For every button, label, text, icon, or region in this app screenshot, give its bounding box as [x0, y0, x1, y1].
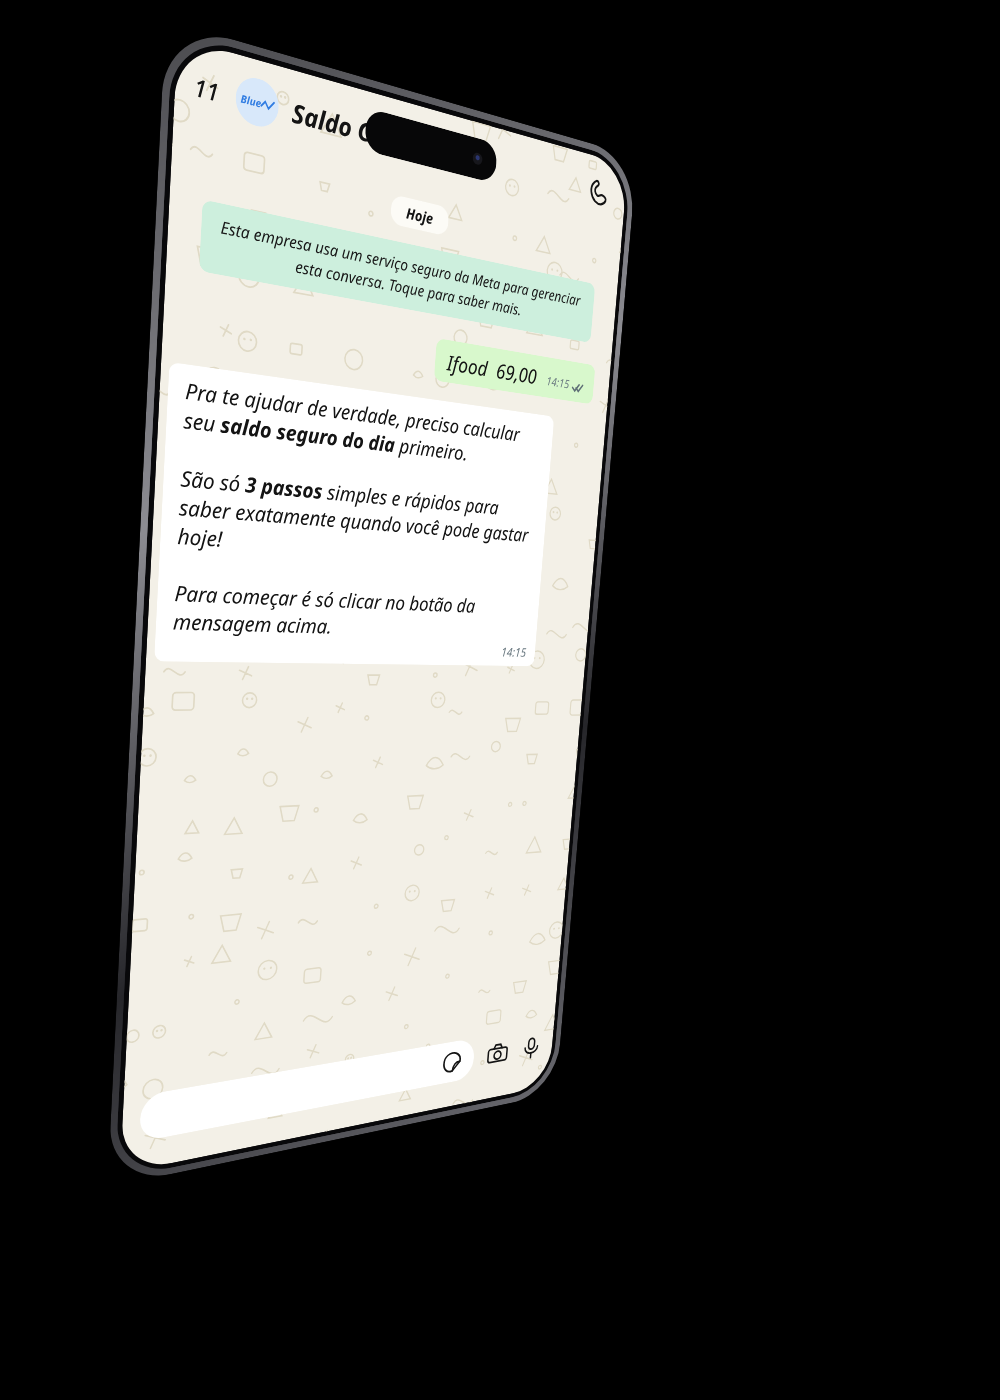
staticText: Hoje	[406, 202, 434, 228]
button[interactable]: Câmera	[483, 1037, 511, 1070]
button[interactable]: Pra te ajudar de verdade, preciso calcul…	[154, 362, 554, 666]
button[interactable]: Saldo Certo	[291, 94, 416, 161]
button[interactable]: Foto do perfil	[234, 73, 280, 131]
staticText: 14:15	[501, 643, 527, 660]
button[interactable]: Ifood 69,00	[434, 338, 596, 404]
button[interactable]: Hoje	[390, 194, 449, 236]
button[interactable]: Mensagem	[139, 1038, 476, 1142]
staticText: 14:15	[546, 372, 570, 392]
staticText: Ifood 69,00	[446, 348, 538, 390]
staticText: Pra te ajudar de verdade, preciso calcul…	[172, 376, 545, 644]
button[interactable]: Figurinhas	[439, 1047, 464, 1077]
button[interactable]: Esta empresa usa um serviço seguro da Me…	[199, 199, 595, 343]
staticText: Esta empresa usa um serviço seguro da Me…	[213, 214, 585, 332]
staticText: 11	[193, 69, 221, 109]
staticText: Blue	[240, 90, 262, 111]
button[interactable]: Áudio	[517, 1031, 544, 1064]
button[interactable]: Ligar	[582, 170, 614, 215]
